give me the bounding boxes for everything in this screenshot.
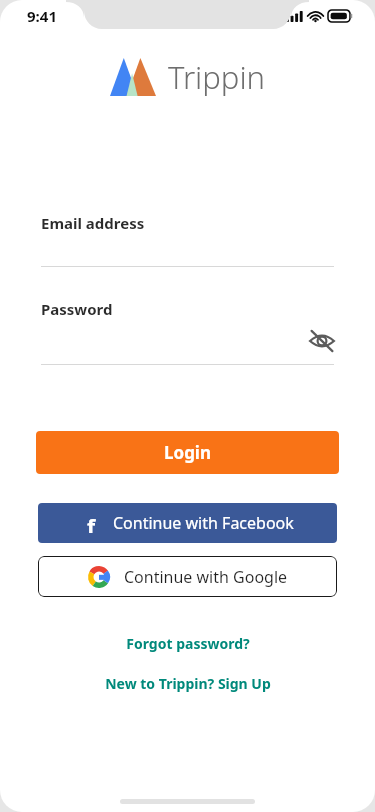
staticText: Continue with Facebook — [113, 512, 294, 534]
staticText: f — [87, 513, 96, 533]
staticText: Forgot password? — [126, 634, 250, 653]
button[interactable]: f — [38, 503, 337, 543]
button[interactable]: Continue with Google — [38, 556, 337, 597]
staticText: New to Trippin? Sign Up — [105, 674, 271, 693]
staticText: Continue with Google — [124, 566, 288, 588]
button[interactable]: Forgot password? — [0, 630, 375, 656]
staticText: Login — [164, 441, 212, 464]
button[interactable]: New to Trippin? Sign Up — [0, 670, 375, 696]
staticText: Trippin — [168, 56, 266, 98]
button[interactable]: Show password — [305, 324, 339, 358]
button[interactable]: Login — [36, 431, 339, 474]
staticText: Email address — [41, 213, 145, 233]
staticText: Password — [41, 299, 113, 319]
staticText: 9:41 — [27, 6, 57, 26]
